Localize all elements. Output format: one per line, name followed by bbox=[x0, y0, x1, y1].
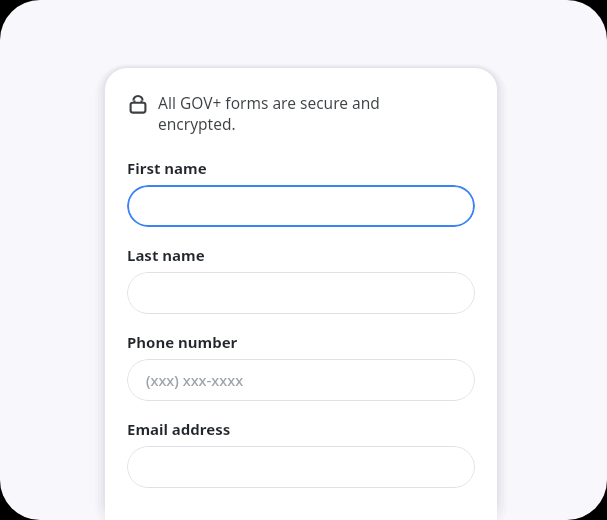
button[interactable]: Last name bbox=[127, 245, 475, 314]
staticText: All GOV+ forms are secure and encrypted. bbox=[158, 92, 380, 135]
staticText: Email address bbox=[127, 419, 231, 439]
button[interactable]: Email address bbox=[127, 419, 475, 488]
button[interactable]: Phone number bbox=[127, 332, 475, 401]
staticText: Last name bbox=[127, 245, 205, 265]
staticText: (xxx) xxx-xxxx bbox=[146, 370, 244, 390]
other: Secure bbox=[128, 94, 148, 114]
staticText: Phone number bbox=[127, 332, 238, 352]
button[interactable]: First name bbox=[127, 158, 475, 227]
staticText: First name bbox=[127, 158, 207, 178]
